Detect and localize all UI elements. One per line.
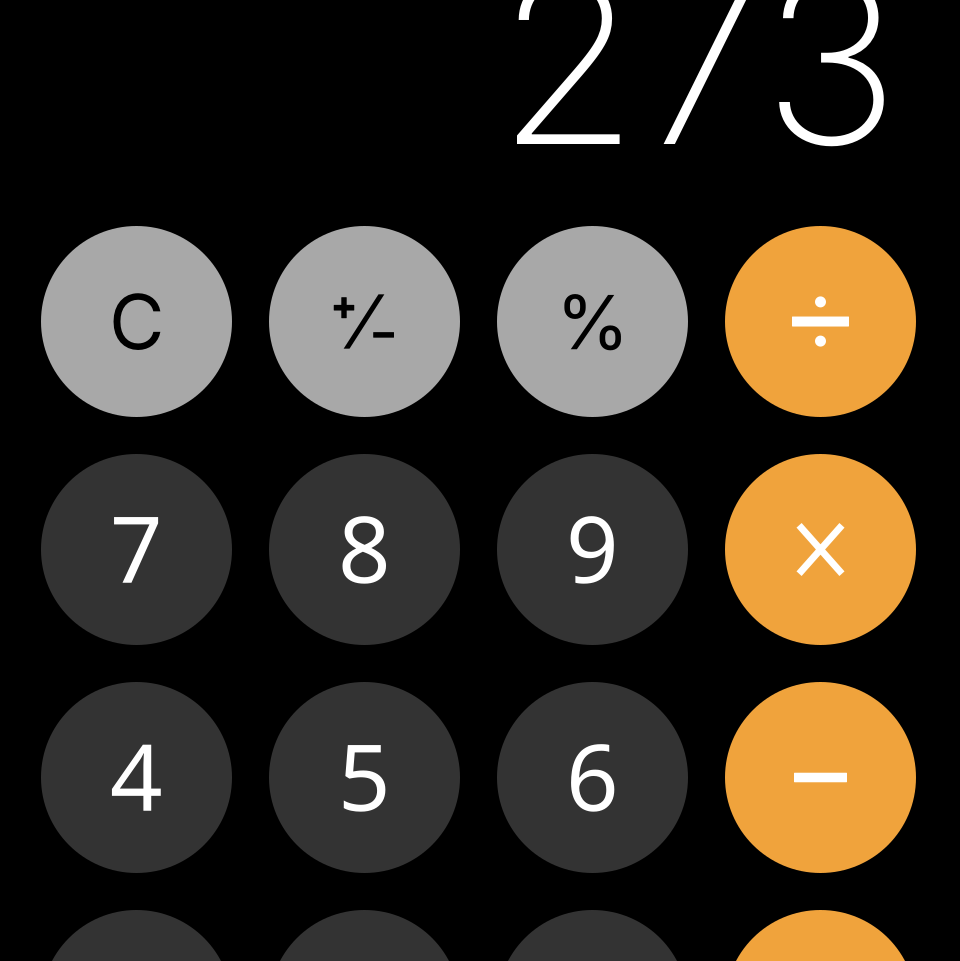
button[interactable]: C bbox=[41, 226, 232, 417]
button[interactable]: % bbox=[497, 226, 688, 417]
staticText: 8 bbox=[338, 486, 391, 608]
staticText: 6 bbox=[566, 714, 619, 836]
button[interactable]: 3 bbox=[497, 910, 688, 961]
button[interactable]: 6 bbox=[497, 682, 688, 873]
button[interactable]: Plus Minus bbox=[269, 226, 460, 417]
staticText: 7 bbox=[110, 486, 163, 608]
staticText: 9 bbox=[566, 486, 619, 608]
button[interactable]: Divide bbox=[725, 226, 916, 417]
button[interactable]: 4 bbox=[41, 682, 232, 873]
staticText: % bbox=[556, 277, 629, 367]
button[interactable]: 2 bbox=[269, 910, 460, 961]
button[interactable]: 5 bbox=[269, 682, 460, 873]
button[interactable]: 8 bbox=[269, 454, 460, 645]
staticText: 4 bbox=[110, 714, 163, 836]
button[interactable]: 7 bbox=[41, 454, 232, 645]
button[interactable]: Add bbox=[725, 910, 916, 961]
button[interactable]: Multiply bbox=[725, 454, 916, 645]
button[interactable]: Subtract bbox=[725, 682, 916, 873]
button[interactable]: 1 bbox=[41, 910, 232, 961]
button[interactable]: 9 bbox=[497, 454, 688, 645]
staticText: C bbox=[109, 275, 165, 367]
staticText: 273 bbox=[496, 0, 899, 200]
staticText: 5 bbox=[338, 714, 391, 836]
